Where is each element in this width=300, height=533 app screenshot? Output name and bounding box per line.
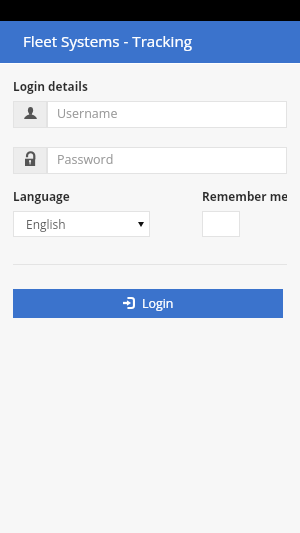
- button[interactable]: Remember me: [202, 211, 240, 237]
- staticText: Login: [142, 295, 174, 312]
- staticText: Password: [57, 151, 114, 168]
- staticText: Username: [57, 105, 118, 122]
- staticText: Fleet Systems - Tracking: [23, 31, 192, 52]
- staticText: Login details: [13, 78, 88, 94]
- button[interactable]: Login: [13, 289, 283, 318]
- staticText: Language: [13, 188, 70, 204]
- button[interactable]: Language English: [13, 211, 150, 237]
- button[interactable]: Password: [13, 147, 287, 174]
- staticText: Remember me: [202, 188, 287, 204]
- staticText: English: [26, 216, 66, 232]
- button[interactable]: Fleet Systems - Tracking: [0, 21, 300, 63]
- button[interactable]: Username: [13, 101, 287, 128]
